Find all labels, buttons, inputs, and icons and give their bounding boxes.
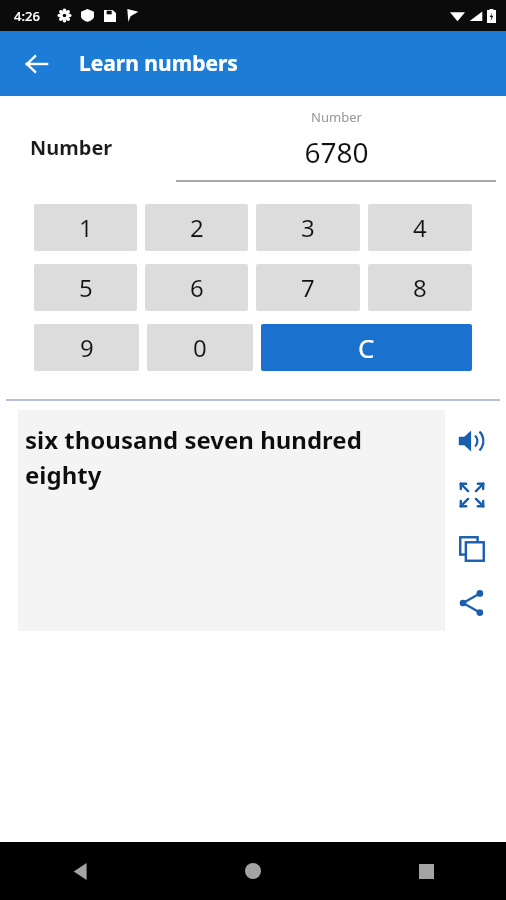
- button[interactable]: Share: [453, 584, 491, 622]
- staticText: C: [358, 330, 375, 365]
- button[interactable]: 6: [145, 264, 248, 311]
- staticText: 7: [301, 271, 315, 304]
- button[interactable]: 0: [147, 324, 253, 371]
- button[interactable]: Back: [16, 43, 58, 85]
- staticText: 6780: [304, 133, 369, 171]
- staticText: 2: [190, 211, 204, 244]
- staticText: 5: [79, 271, 93, 304]
- button[interactable]: Home: [233, 851, 273, 891]
- staticText: 9: [80, 331, 94, 364]
- button[interactable]: 3: [256, 204, 360, 251]
- button[interactable]: 2: [145, 204, 248, 251]
- staticText: Number: [311, 108, 362, 126]
- button[interactable]: Speak: [453, 422, 491, 460]
- button[interactable]: Back: [60, 851, 100, 891]
- staticText: 3: [301, 211, 315, 244]
- button[interactable]: Copy: [453, 530, 491, 568]
- staticText: Number: [30, 134, 113, 161]
- staticText: 4: [413, 211, 427, 244]
- staticText: 6: [190, 271, 204, 304]
- staticText: six thousand seven hundred eighty: [25, 423, 437, 491]
- staticText: Learn numbers: [79, 49, 238, 78]
- button[interactable]: Recents: [406, 851, 446, 891]
- button[interactable]: six thousand seven hundred eighty: [18, 410, 445, 631]
- button[interactable]: 8: [368, 264, 472, 311]
- button[interactable]: 1: [34, 204, 137, 251]
- staticText: 8: [413, 271, 427, 304]
- button[interactable]: Expand: [453, 476, 491, 514]
- button[interactable]: 9: [34, 324, 139, 371]
- staticText: 1: [79, 211, 93, 244]
- button[interactable]: 5: [34, 264, 137, 311]
- staticText: 4:26: [14, 7, 40, 25]
- staticText: 0: [193, 331, 207, 364]
- button[interactable]: C: [261, 324, 472, 371]
- button[interactable]: 7: [256, 264, 360, 311]
- button[interactable]: 4: [368, 204, 472, 251]
